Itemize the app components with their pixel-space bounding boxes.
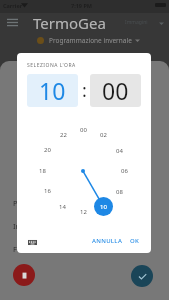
staticText: TermoGea [33,13,106,32]
staticText: Fine [13,244,28,254]
button[interactable]: 06 [116,163,132,179]
staticText: 04 [116,147,123,155]
button[interactable]: Switch to text input [25,235,39,249]
staticText: Carrier [3,2,23,9]
staticText: 08 [116,188,123,196]
staticText: 14 [59,203,66,211]
staticText: 12 [80,208,87,216]
staticText: Periodo [13,198,41,208]
staticText: SELEZIONA L'ORA [27,62,76,69]
button[interactable]: 04 [111,143,127,159]
button[interactable]: ANNULLA [90,234,125,248]
button[interactable]: Confirm [131,265,153,287]
staticText: Inizio [13,221,33,231]
button[interactable]: OK [128,234,142,248]
staticText: 10 [39,75,66,106]
staticText: 18 [39,167,46,175]
staticText: OK [130,237,140,245]
staticText: 7:19 PM [71,2,93,9]
button[interactable]: 14 [54,199,70,215]
button[interactable]: 12 [75,204,91,220]
button[interactable]: 18 [34,163,50,179]
staticText: 22 [60,131,67,139]
staticText: Immagini [125,19,148,26]
staticText: Programmazione invernale [49,36,132,45]
staticText: 06 [121,167,128,175]
button[interactable]: 16 [39,183,55,199]
staticText: : [82,78,87,103]
button[interactable]: 00 [90,74,141,107]
staticText: 10 [100,203,107,211]
staticText: 00 [80,126,87,134]
button[interactable]: 02 [95,127,111,143]
button[interactable]: 10 [27,74,78,107]
staticText: 02 [100,131,107,139]
staticText: ANNULLA [92,237,123,245]
button[interactable]: 08 [111,184,127,200]
button[interactable]: 22 [55,127,71,143]
button[interactable]: Delete [13,264,35,286]
staticText: 16 [44,187,51,195]
button[interactable]: 10 [95,199,111,215]
staticText: 20 [44,146,51,154]
button[interactable]: 00 [75,122,91,138]
staticText: 00 [102,75,129,106]
button[interactable]: 20 [39,142,55,158]
button[interactable]: More options [155,17,167,29]
button[interactable]: Menu [0,13,24,32]
